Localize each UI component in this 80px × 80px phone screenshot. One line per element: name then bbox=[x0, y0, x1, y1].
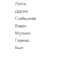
staticText: Лента bbox=[15, 1, 26, 6]
staticText: Видео bbox=[15, 23, 26, 28]
staticText: Друзья bbox=[15, 8, 28, 14]
staticText: Музыка bbox=[15, 30, 30, 35]
staticText: Главная bbox=[15, 38, 29, 43]
staticText: Еще bbox=[15, 45, 23, 50]
staticText: Сообщения bbox=[15, 16, 36, 21]
